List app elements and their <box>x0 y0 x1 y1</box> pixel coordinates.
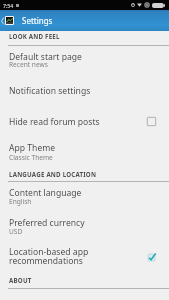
button[interactable]: Disabled checkbox <box>145 115 158 128</box>
button[interactable]: Default start page <box>0 46 169 76</box>
staticText: Default start page <box>9 51 82 63</box>
staticText: USD <box>9 227 23 236</box>
button[interactable]: Preferred currency <box>0 212 169 242</box>
button[interactable]: Hide read forum posts <box>0 106 169 136</box>
staticText: recommendations <box>9 255 83 267</box>
staticText: Hide read forum posts <box>9 116 100 128</box>
staticText: Location-based app <box>9 246 89 258</box>
staticText: Recent news <box>9 60 48 69</box>
staticText: Settings <box>22 15 53 26</box>
staticText: Content language <box>9 187 82 199</box>
button[interactable]: App Theme <box>0 136 169 166</box>
button[interactable]: Content language <box>0 182 169 212</box>
staticText: Preferred currency <box>9 217 85 229</box>
staticText: LANGUAGE AND LOCATION <box>9 170 97 178</box>
button[interactable]: Enabled checkbox <box>145 251 158 264</box>
staticText: Notification settings <box>9 85 91 97</box>
button[interactable]: Notification settings <box>0 76 169 106</box>
staticText: Classic Theme <box>9 153 53 162</box>
staticText: ABOUT <box>9 276 32 284</box>
staticText: English <box>9 197 32 206</box>
button[interactable]: Location-based app <box>0 242 169 272</box>
staticText: 7:54 <box>3 2 14 9</box>
staticText: LOOK AND FEEL <box>9 32 60 40</box>
button[interactable]: Navigate up <box>0 10 5 31</box>
staticText: App Theme <box>9 142 56 154</box>
